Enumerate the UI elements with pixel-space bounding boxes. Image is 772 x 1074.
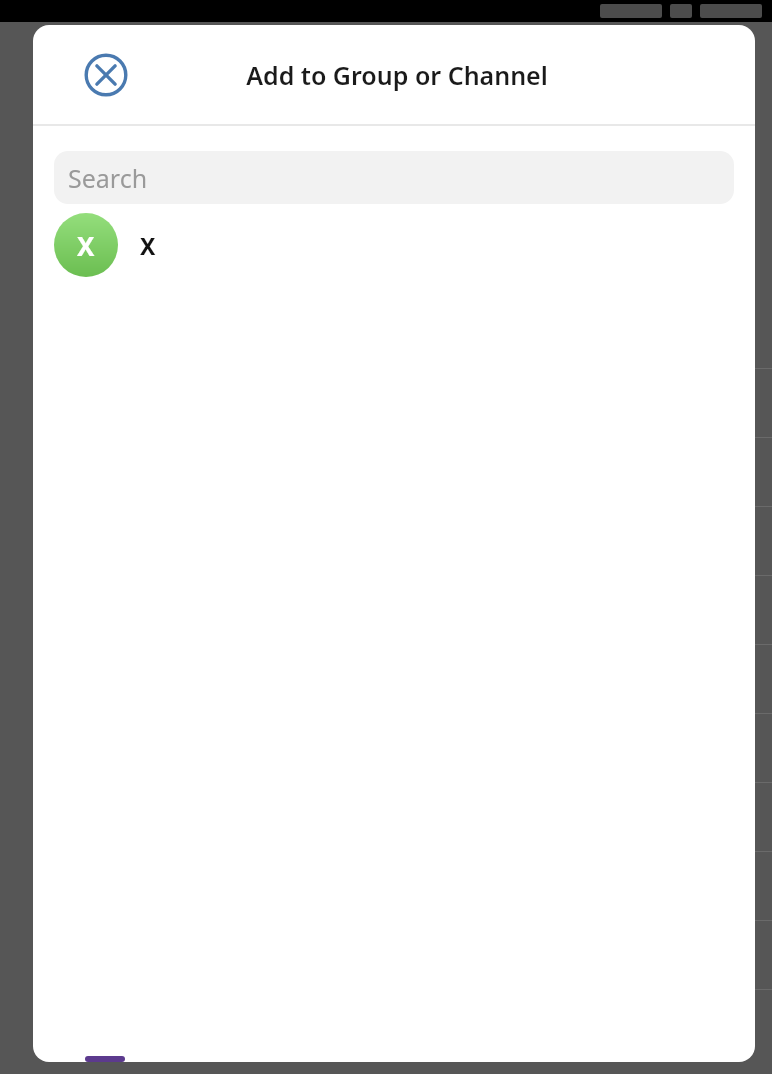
button[interactable]: Search bbox=[54, 151, 734, 204]
staticText: Add to Group or Channel bbox=[246, 58, 548, 92]
button[interactable]: X bbox=[33, 204, 755, 286]
staticText: Search bbox=[68, 161, 148, 195]
staticText: X bbox=[140, 230, 156, 261]
staticText: X bbox=[77, 228, 95, 263]
button[interactable]: Close bbox=[80, 49, 132, 101]
